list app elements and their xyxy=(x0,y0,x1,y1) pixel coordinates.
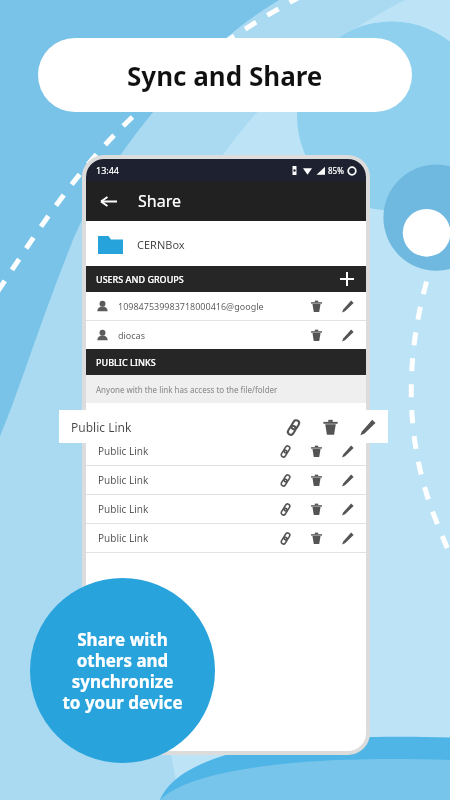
staticText: Public Link xyxy=(98,473,149,487)
button[interactable]: Copy link xyxy=(282,416,304,438)
button[interactable]: Back xyxy=(94,187,122,215)
button[interactable]: Add user or group xyxy=(336,268,358,290)
button[interactable]: Copy link xyxy=(276,442,294,460)
button[interactable]: Public Link xyxy=(86,437,366,465)
staticText: Public Link xyxy=(98,444,149,458)
staticText: 85% xyxy=(328,165,344,176)
button[interactable]: Delete xyxy=(307,471,325,489)
button[interactable]: 109847539983718000416@google xyxy=(86,292,366,320)
button[interactable]: Public Link xyxy=(59,410,388,443)
button[interactable]: Edit xyxy=(338,471,356,489)
button[interactable]: Public Link xyxy=(86,524,366,552)
staticText: Public Link xyxy=(98,531,149,545)
button[interactable]: Delete xyxy=(307,500,325,518)
staticText: Anyone with the link has access to the f… xyxy=(96,384,278,395)
button[interactable]: Copy link xyxy=(276,529,294,547)
button[interactable]: Edit xyxy=(338,500,356,518)
button[interactable]: Edit xyxy=(338,297,356,315)
staticText: CERNBox xyxy=(137,237,185,252)
button[interactable]: Share with others and synchronize to you… xyxy=(30,578,215,763)
button[interactable]: Delete xyxy=(307,529,325,547)
button[interactable]: Sync and Share xyxy=(38,38,412,112)
button[interactable]: CERNBox xyxy=(86,221,366,266)
button[interactable]: Public Link xyxy=(86,495,366,523)
staticText: USERS AND GROUPS xyxy=(96,273,184,285)
staticText: PUBLIC LINKS xyxy=(96,356,156,368)
button[interactable]: Copy link xyxy=(276,500,294,518)
button[interactable]: Public Link xyxy=(86,466,366,494)
button[interactable]: Delete xyxy=(319,416,341,438)
button[interactable]: Edit xyxy=(338,442,356,460)
button[interactable]: diocas xyxy=(86,321,366,349)
staticText: Sync and Share xyxy=(127,58,323,93)
staticText: 109847539983718000416@google xyxy=(118,300,264,312)
staticText: Public Link xyxy=(98,502,149,516)
button[interactable]: Edit xyxy=(356,416,378,438)
button[interactable]: Copy link xyxy=(276,471,294,489)
staticText: Share xyxy=(138,190,181,212)
button[interactable]: Delete xyxy=(307,297,325,315)
button[interactable]: Delete xyxy=(307,326,325,344)
staticText: Share with others and synchronize to you… xyxy=(62,628,183,714)
button[interactable]: Edit xyxy=(338,529,356,547)
button[interactable]: Delete xyxy=(307,442,325,460)
staticText: Public Link xyxy=(71,419,132,435)
button[interactable]: Edit xyxy=(338,326,356,344)
staticText: 13:44 xyxy=(96,164,120,176)
staticText: diocas xyxy=(118,329,145,341)
